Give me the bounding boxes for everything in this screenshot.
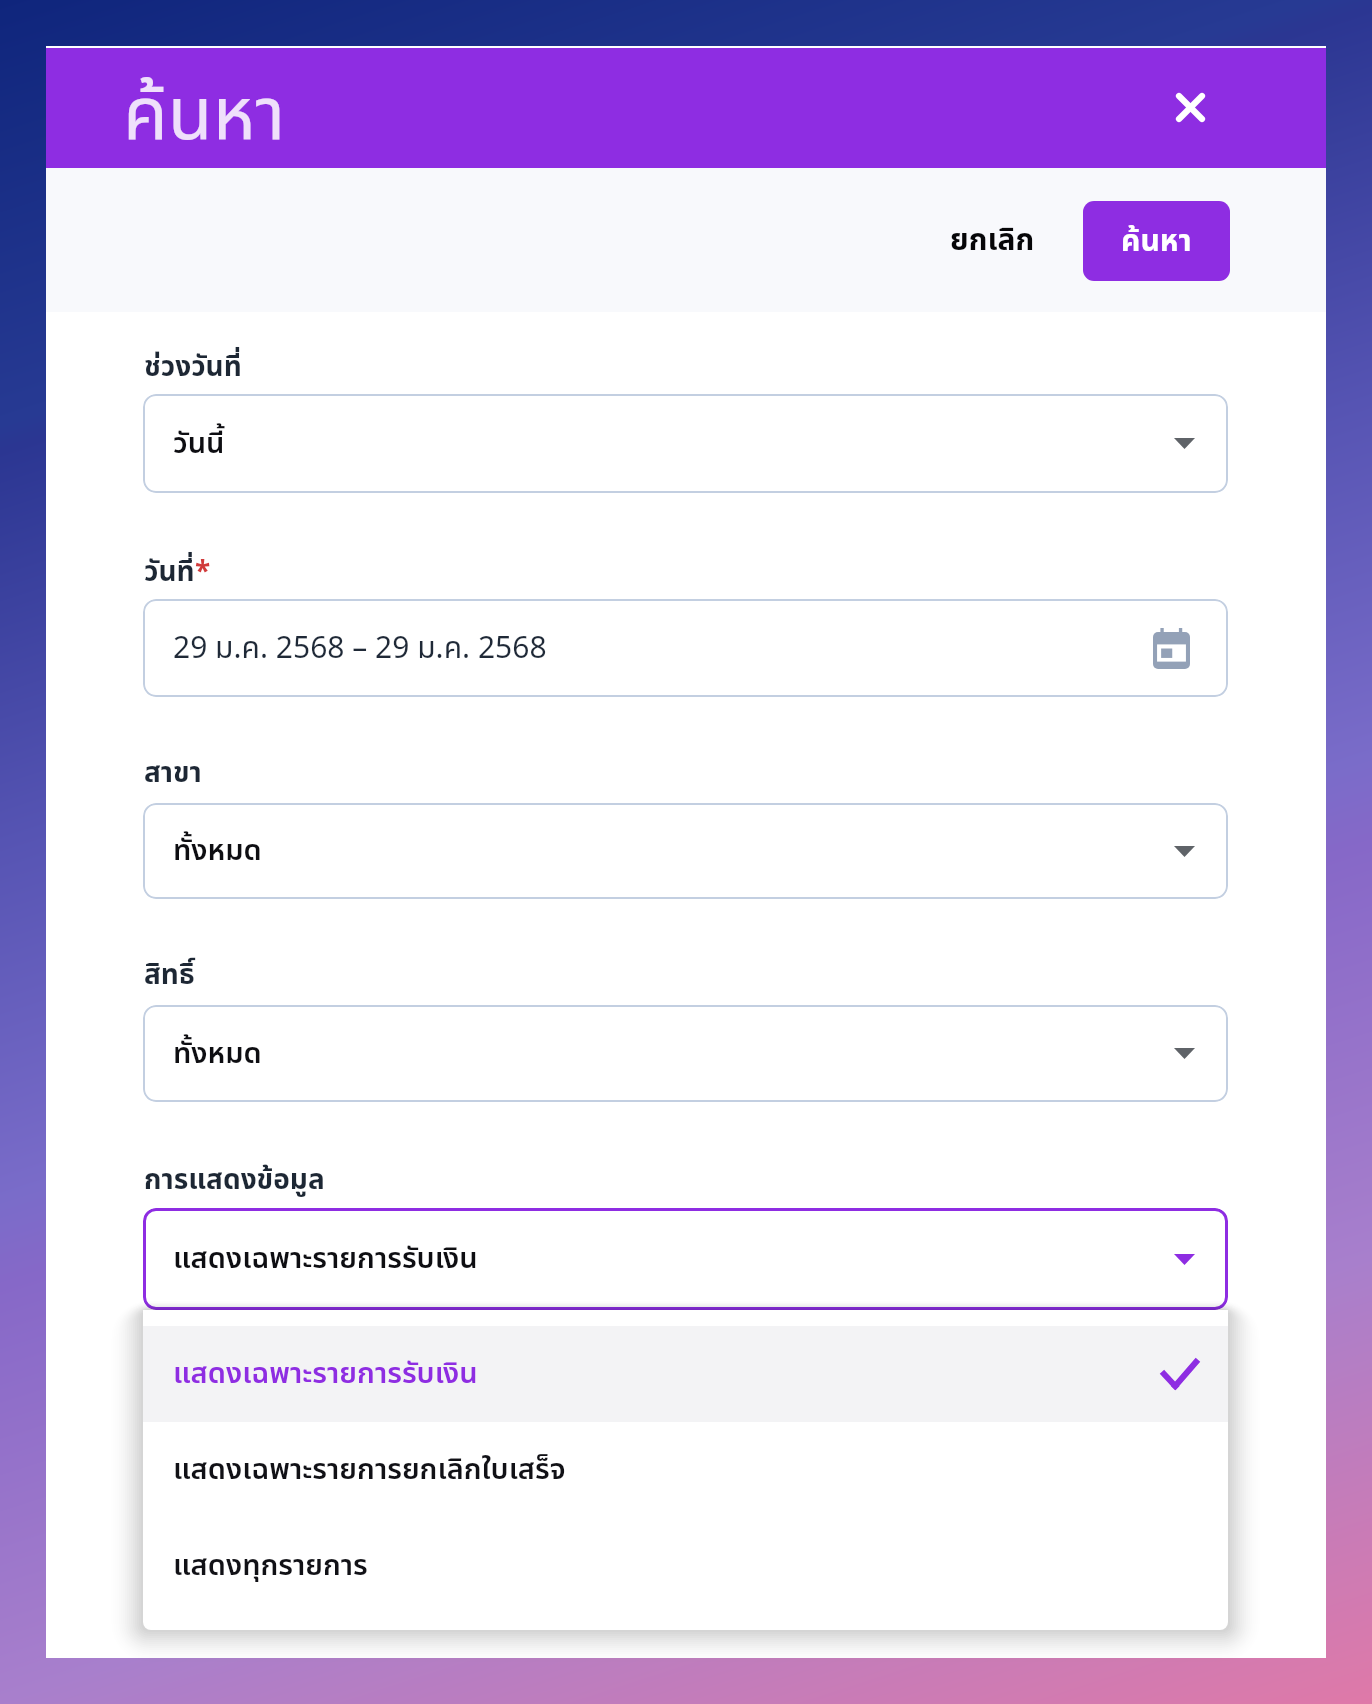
staticText: ค้นหา	[1121, 219, 1192, 264]
button[interactable]: ทั้งหมด	[143, 1005, 1228, 1102]
staticText: ทั้งหมด	[173, 829, 262, 873]
staticText: 29 ม.ค. 2568 – 29 ม.ค. 2568	[173, 626, 547, 671]
staticText: ช่วงวันที่	[144, 346, 242, 388]
button[interactable]: ค้นหา	[1083, 201, 1230, 281]
button[interactable]: แสดงเฉพาะรายการรับเงิน	[143, 1326, 1228, 1422]
staticText: ยกเลิก	[950, 218, 1035, 263]
button[interactable]: แสดงเฉพาะรายการยกเลิกใบเสร็จ	[143, 1422, 1228, 1518]
button[interactable]: Close	[1162, 79, 1218, 135]
button[interactable]: วันนี้	[143, 394, 1228, 493]
button[interactable]: ทั้งหมด	[143, 803, 1228, 899]
button[interactable]: ยกเลิก	[936, 194, 1049, 286]
staticText: แสดงทุกรายการ	[173, 1544, 368, 1588]
staticText: แสดงเฉพาะรายการรับเงิน	[173, 1237, 478, 1281]
staticText: วันนี้	[173, 422, 225, 466]
staticText: ทั้งหมด	[173, 1032, 262, 1076]
button[interactable]: แสดงทุกรายการ	[143, 1518, 1228, 1614]
staticText: วันที่	[144, 551, 195, 593]
staticText: การแสดงข้อมูล	[144, 1159, 325, 1201]
staticText: สาขา	[144, 752, 202, 794]
staticText: ค้นหา	[123, 62, 286, 172]
staticText: แสดงเฉพาะรายการรับเงิน	[173, 1352, 478, 1396]
button[interactable]: แสดงเฉพาะรายการรับเงิน	[143, 1208, 1228, 1310]
button[interactable]: 29 ม.ค. 2568 – 29 ม.ค. 2568	[143, 599, 1228, 697]
staticText: *	[195, 551, 211, 593]
staticText: แสดงเฉพาะรายการยกเลิกใบเสร็จ	[173, 1448, 566, 1492]
staticText: สิทธิ์	[144, 954, 195, 996]
